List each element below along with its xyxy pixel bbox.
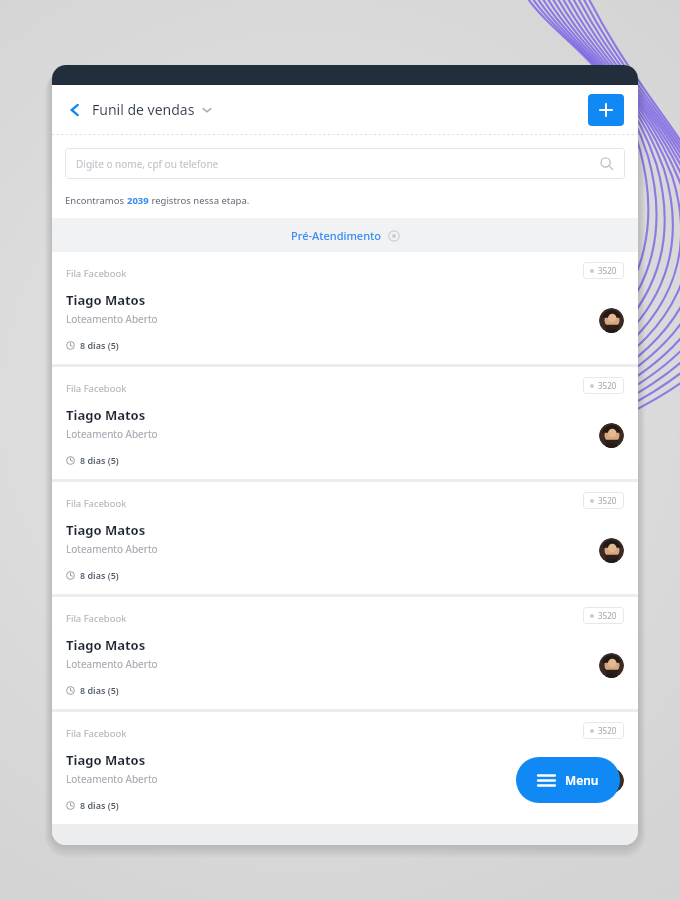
staticText: Menu [565, 772, 599, 788]
staticText: Fila Facebook [66, 727, 127, 740]
other: Foto do responsável [599, 308, 624, 333]
staticText: Loteamento Aberto [66, 427, 158, 441]
staticText: 8 dias (5) [80, 569, 119, 581]
staticText: 3520 [598, 265, 617, 276]
other: Foto do responsável [599, 423, 624, 448]
staticText: Tiago Matos [66, 636, 146, 654]
staticText: Encontramos [65, 194, 127, 207]
staticText: Tiago Matos [66, 521, 146, 539]
staticText: Digite o nome, cpf ou telefone [76, 157, 219, 171]
other: Voltar [68, 103, 82, 117]
staticText: Loteamento Aberto [66, 312, 158, 326]
button[interactable]: Menu [516, 757, 620, 803]
button[interactable]: Fila Facebook [52, 367, 638, 479]
staticText: Fila Facebook [66, 497, 127, 510]
staticText: 2039 [127, 194, 149, 207]
staticText: 3520 [598, 610, 617, 621]
staticText: 8 dias (5) [80, 684, 119, 696]
staticText: registros nessa etapa. [149, 194, 250, 207]
button[interactable]: Fila Facebook [52, 597, 638, 709]
other: Foto do responsável [599, 653, 624, 678]
staticText: Pré-Atendimento [291, 228, 381, 243]
other: Pesquisar [600, 157, 613, 170]
button[interactable]: Fila Facebook [52, 482, 638, 594]
staticText: 8 dias (5) [80, 339, 119, 351]
staticText: Fila Facebook [66, 382, 127, 395]
staticText: Fila Facebook [66, 267, 127, 280]
staticText: Fila Facebook [66, 612, 127, 625]
staticText: Tiago Matos [66, 291, 146, 309]
button[interactable]: Fila Facebook [52, 252, 638, 364]
staticText: Loteamento Aberto [66, 657, 158, 671]
staticText: 3520 [598, 725, 617, 736]
other: Foto do responsável [599, 768, 624, 793]
staticText: 3520 [598, 495, 617, 506]
button[interactable]: Pré-Atendimento [52, 218, 638, 252]
button[interactable]: Digite o nome, cpf ou telefone [65, 148, 625, 179]
staticText: 3520 [598, 380, 617, 391]
staticText: Loteamento Aberto [66, 772, 158, 786]
staticText: 8 dias (5) [80, 454, 119, 466]
button[interactable]: Voltar [62, 94, 218, 125]
staticText: Tiago Matos [66, 751, 146, 769]
button[interactable]: Adicionar [588, 94, 624, 126]
button[interactable]: Fila Facebook [52, 712, 638, 824]
other: Foto do responsável [599, 538, 624, 563]
staticText: Tiago Matos [66, 406, 146, 424]
staticText: Loteamento Aberto [66, 542, 158, 556]
staticText: 8 dias (5) [80, 799, 119, 811]
staticText: Funil de vendas [92, 100, 195, 119]
